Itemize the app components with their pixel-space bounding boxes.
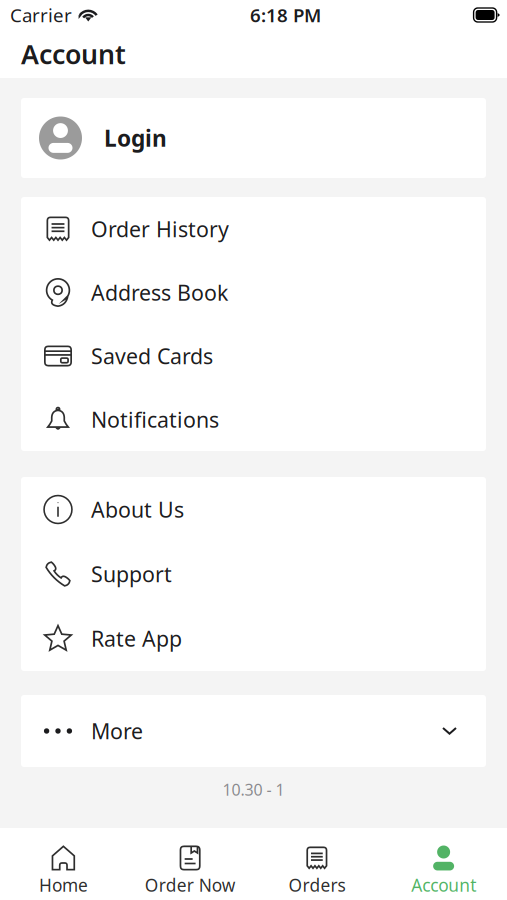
- staticText: About Us: [91, 495, 184, 524]
- button[interactable]: Notifications: [21, 388, 486, 451]
- button[interactable]: Account: [380, 825, 507, 900]
- staticText: Account: [411, 873, 476, 896]
- button[interactable]: More: [21, 695, 486, 767]
- staticText: Order Now: [145, 873, 236, 896]
- staticText: Order History: [91, 215, 229, 243]
- staticText: More: [91, 717, 143, 745]
- button[interactable]: Support: [21, 542, 486, 606]
- staticText: Support: [91, 560, 172, 588]
- button[interactable]: Order Now: [127, 825, 254, 900]
- button[interactable]: Login: [21, 98, 486, 178]
- staticText: 6:18 PM: [250, 3, 321, 27]
- staticText: Rate App: [91, 624, 182, 653]
- staticText: Orders: [288, 873, 345, 896]
- button[interactable]: Address Book: [21, 261, 486, 324]
- staticText: Login: [104, 123, 167, 153]
- staticText: 10.30 - 1: [222, 779, 284, 800]
- button[interactable]: Rate App: [21, 606, 486, 671]
- staticText: Home: [39, 873, 88, 896]
- button[interactable]: Saved Cards: [21, 324, 486, 388]
- button[interactable]: About Us: [21, 477, 486, 542]
- staticText: Carrier: [10, 3, 72, 27]
- button[interactable]: Home: [0, 825, 127, 900]
- staticText: Address Book: [91, 278, 228, 307]
- staticText: Notifications: [91, 405, 219, 434]
- button[interactable]: Order History: [21, 197, 486, 261]
- staticText: Saved Cards: [91, 342, 213, 370]
- button[interactable]: Orders: [253, 825, 380, 900]
- staticText: Account: [21, 36, 126, 72]
